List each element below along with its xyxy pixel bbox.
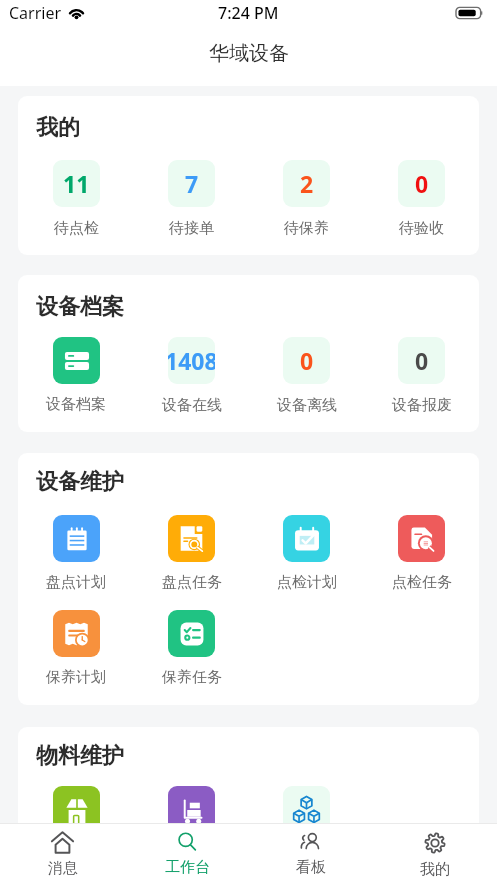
staticText: 待接单: [169, 219, 214, 238]
staticText: 工作台: [165, 858, 210, 877]
button[interactable]: 0: [364, 337, 479, 415]
staticText: 待保养: [284, 219, 329, 238]
button[interactable]: 2: [249, 160, 364, 238]
button[interactable]: 0: [249, 337, 364, 415]
staticText: 看板: [296, 858, 326, 877]
button[interactable]: 物料: [134, 786, 249, 833]
staticText: 11: [63, 168, 90, 199]
button[interactable]: 7: [134, 160, 249, 238]
button[interactable]: 0: [364, 160, 479, 238]
button[interactable]: 保养任务: [134, 610, 249, 687]
staticText: 2: [300, 168, 314, 199]
staticText: 设备离线: [277, 396, 337, 415]
button[interactable]: 看板: [249, 824, 373, 883]
staticText: 保养任务: [162, 668, 222, 687]
staticText: 盘点任务: [162, 573, 222, 592]
staticText: 0: [415, 345, 429, 376]
staticText: 华域设备: [209, 41, 289, 66]
button[interactable]: 1408: [134, 337, 249, 415]
staticText: 点检任务: [392, 573, 452, 592]
staticText: 保养计划: [46, 668, 106, 687]
staticText: 1408: [168, 345, 215, 376]
staticText: 消息: [48, 859, 78, 878]
button[interactable]: 仓库: [18, 786, 134, 833]
button[interactable]: 11: [18, 160, 134, 238]
button[interactable]: 点检任务: [364, 515, 479, 592]
button[interactable]: 保养计划: [18, 610, 134, 687]
button[interactable]: 盘点任务: [134, 515, 249, 592]
staticText: 点检计划: [277, 573, 337, 592]
staticText: 设备报废: [392, 396, 452, 415]
staticText: 7:24 PM: [218, 2, 279, 24]
button[interactable]: 点检计划: [249, 515, 364, 592]
button[interactable]: 消息: [0, 824, 125, 883]
button[interactable]: 库存: [249, 786, 364, 833]
button[interactable]: 盘点计划: [18, 515, 134, 592]
staticText: 0: [300, 345, 314, 376]
staticText: 我的: [36, 114, 80, 142]
staticText: 设备在线: [162, 396, 222, 415]
staticText: Carrier: [9, 2, 62, 24]
staticText: 7: [185, 168, 199, 199]
staticText: 设备档案: [36, 293, 124, 321]
staticText: 待点检: [54, 219, 99, 238]
button[interactable]: 我的: [373, 824, 497, 883]
button[interactable]: 设备档案: [18, 337, 134, 414]
staticText: 0: [415, 168, 429, 199]
staticText: 待验收: [399, 219, 444, 238]
staticText: 我的: [420, 860, 450, 879]
staticText: 盘点计划: [46, 573, 106, 592]
staticText: 设备档案: [46, 395, 106, 414]
staticText: 设备维护: [36, 468, 124, 496]
staticText: 物料维护: [36, 742, 124, 770]
button[interactable]: 工作台: [125, 824, 249, 883]
